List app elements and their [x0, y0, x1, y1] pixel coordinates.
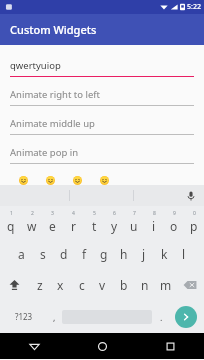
- button[interactable]: Enter: [175, 306, 197, 328]
- staticText: y: [111, 218, 118, 234]
- button[interactable]: Animate right to left: [0, 83, 204, 112]
- staticText: w: [27, 218, 37, 234]
- button[interactable]: l: [174, 238, 194, 269]
- staticText: qwertyuiop: [10, 59, 61, 72]
- staticText: Animate middle up: [10, 117, 95, 130]
- staticText: e: [49, 218, 56, 234]
- staticText: ?123: [15, 311, 33, 322]
- button[interactable]: .: [154, 300, 168, 333]
- staticText: 0: [193, 210, 196, 217]
- staticText: q: [7, 218, 15, 234]
- button[interactable]: ?123: [0, 300, 48, 333]
- staticText: g: [100, 246, 108, 262]
- button[interactable]: 3: [42, 206, 63, 238]
- staticText: i: [152, 218, 156, 234]
- button[interactable]: Animate pop in: [0, 141, 204, 170]
- button[interactable]: 7: [124, 206, 144, 238]
- button[interactable]: c: [71, 269, 92, 300]
- staticText: o: [170, 218, 178, 234]
- staticText: a: [18, 246, 25, 262]
- staticText: x: [57, 277, 64, 293]
- button[interactable]: v: [92, 269, 113, 300]
- button[interactable]: qwertyuiop: [0, 54, 204, 83]
- staticText: n: [141, 277, 149, 293]
- button[interactable]: b: [113, 269, 134, 300]
- button[interactable]: Voice input: [0, 185, 204, 206]
- button[interactable]: a: [11, 238, 32, 269]
- button[interactable]: 9: [164, 206, 184, 238]
- button[interactable]: s: [32, 238, 53, 269]
- button[interactable]: j: [134, 238, 154, 269]
- staticText: 5:22: [187, 2, 201, 12]
- button[interactable]: Animate middle up: [0, 112, 204, 141]
- button[interactable]: Shift: [0, 269, 29, 300]
- staticText: 2: [31, 210, 34, 217]
- staticText: z: [37, 277, 43, 293]
- button[interactable]: 4: [63, 206, 84, 238]
- button[interactable]: 1: [0, 206, 21, 238]
- staticText: 6: [113, 210, 116, 217]
- button[interactable]: ,: [48, 300, 60, 333]
- staticText: 3: [51, 210, 54, 217]
- button[interactable]: k: [154, 238, 174, 269]
- staticText: r: [71, 218, 76, 234]
- staticText: k: [161, 246, 168, 262]
- button[interactable]: g: [94, 238, 114, 269]
- button[interactable]: f: [74, 238, 94, 269]
- button[interactable]: Recent apps: [136, 333, 204, 359]
- staticText: v: [99, 277, 106, 293]
- staticText: 8: [153, 210, 156, 217]
- button[interactable]: 2: [21, 206, 42, 238]
- button[interactable]: Back: [0, 333, 68, 359]
- staticText: ,: [53, 311, 56, 323]
- staticText: j: [142, 246, 146, 262]
- button[interactable]: 8: [144, 206, 164, 238]
- staticText: t: [92, 218, 97, 234]
- staticText: c: [79, 277, 85, 293]
- staticText: .: [160, 311, 163, 323]
- staticText: 7: [133, 210, 136, 217]
- staticText: s: [40, 246, 46, 262]
- staticText: u: [130, 218, 138, 234]
- staticText: b: [120, 277, 128, 293]
- staticText: m: [160, 277, 172, 293]
- button[interactable]: x: [50, 269, 71, 300]
- staticText: l: [182, 246, 186, 262]
- staticText: 5: [93, 210, 96, 217]
- button[interactable]: Backspace: [176, 269, 204, 300]
- staticText: d: [60, 246, 68, 262]
- staticText: 1: [10, 210, 13, 217]
- button[interactable]: m: [155, 269, 176, 300]
- staticText: Animate pop in: [10, 146, 79, 159]
- staticText: h: [120, 246, 128, 262]
- button[interactable]: n: [134, 269, 155, 300]
- staticText: p: [190, 218, 198, 234]
- staticText: Animate right to left: [10, 88, 101, 101]
- button[interactable]: h: [114, 238, 134, 269]
- staticText: 4: [72, 210, 75, 217]
- button[interactable]: 6: [104, 206, 124, 238]
- staticText: f: [82, 246, 87, 262]
- button[interactable]: z: [29, 269, 50, 300]
- button[interactable]: 5: [84, 206, 104, 238]
- button[interactable]: Voice input: [185, 190, 197, 202]
- staticText: 9: [173, 210, 176, 217]
- staticText: Custom Widgets: [10, 22, 97, 37]
- button[interactable]: 0: [184, 206, 204, 238]
- button[interactable]: Home: [68, 333, 136, 359]
- button[interactable]: d: [53, 238, 74, 269]
